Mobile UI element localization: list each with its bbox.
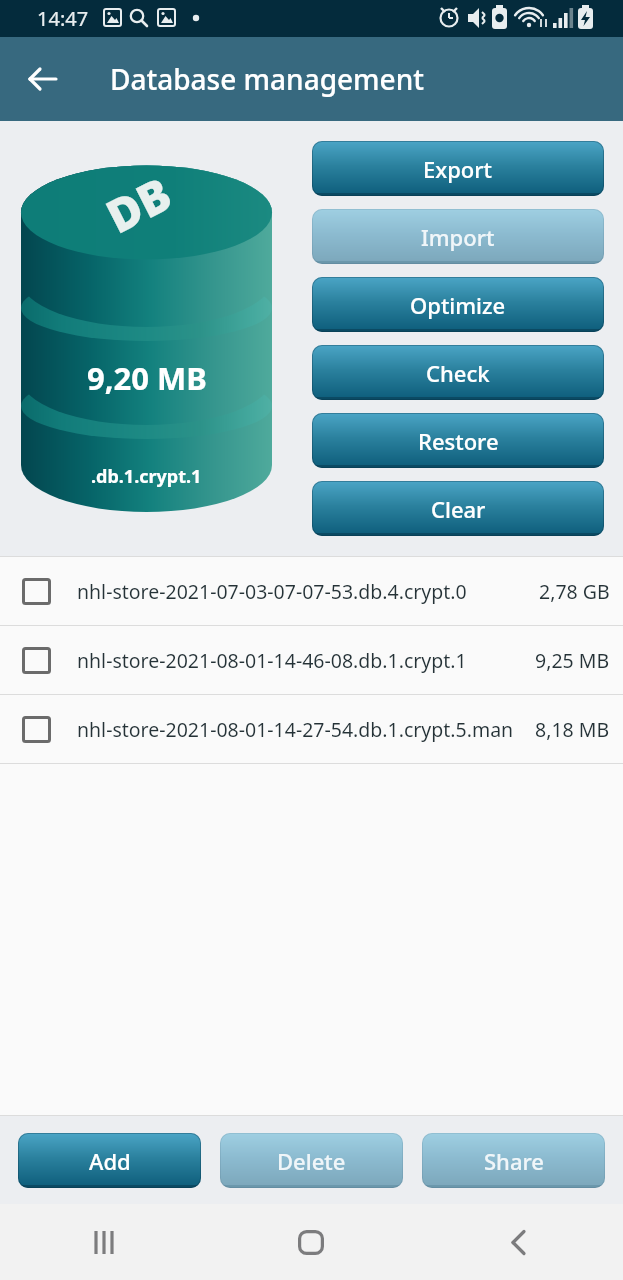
staticText: Export bbox=[423, 154, 493, 184]
button[interactable]: Check bbox=[312, 345, 604, 400]
button[interactable]: nhl-store-2021-08-01-14-46-08.db.1.crypt… bbox=[0, 626, 623, 694]
button[interactable]: Share bbox=[422, 1133, 605, 1188]
button[interactable]: Back bbox=[415, 1204, 623, 1280]
staticText: 9,25 MB bbox=[535, 647, 610, 674]
button[interactable]: Add bbox=[18, 1133, 201, 1188]
staticText: nhl-store-2021-08-01-14-46-08.db.1.crypt… bbox=[77, 647, 467, 674]
button[interactable]: Optimize bbox=[312, 277, 604, 332]
button[interactable]: Delete bbox=[220, 1133, 403, 1188]
button[interactable]: nhl-store-2021-07-03-07-07-53.db.4.crypt… bbox=[0, 557, 623, 625]
button[interactable]: nhl-store-2021-08-01-14-27-54.db.1.crypt… bbox=[0, 695, 623, 763]
staticText: .db.1.crypt.1 bbox=[91, 464, 202, 489]
staticText: Add bbox=[89, 1146, 131, 1176]
staticText: 8,18 MB bbox=[535, 716, 610, 743]
button[interactable]: Back bbox=[19, 55, 67, 103]
staticText: nhl-store-2021-07-03-07-07-53.db.4.crypt… bbox=[77, 578, 467, 605]
staticText: DB bbox=[95, 162, 182, 247]
staticText: Share bbox=[484, 1146, 544, 1176]
staticText: nhl-store-2021-08-01-14-27-54.db.1.crypt… bbox=[77, 716, 514, 743]
staticText: Database management bbox=[110, 60, 424, 98]
staticText: Optimize bbox=[410, 290, 506, 320]
staticText: 9,20 MB bbox=[87, 357, 207, 399]
staticText: Check bbox=[426, 358, 490, 388]
button[interactable]: Clear bbox=[312, 481, 604, 536]
button[interactable]: Recent apps bbox=[0, 1204, 207, 1280]
button[interactable]: Restore bbox=[312, 413, 604, 468]
staticText: Delete bbox=[277, 1146, 346, 1176]
staticText: Import bbox=[421, 222, 495, 252]
button[interactable]: Import bbox=[312, 209, 604, 264]
staticText: Clear bbox=[431, 494, 486, 524]
button[interactable]: Export bbox=[312, 141, 604, 196]
staticText: 14:47 bbox=[37, 5, 89, 32]
staticText: 2,78 GB bbox=[539, 578, 610, 605]
button[interactable]: Home bbox=[207, 1204, 415, 1280]
staticText: Restore bbox=[418, 426, 499, 456]
